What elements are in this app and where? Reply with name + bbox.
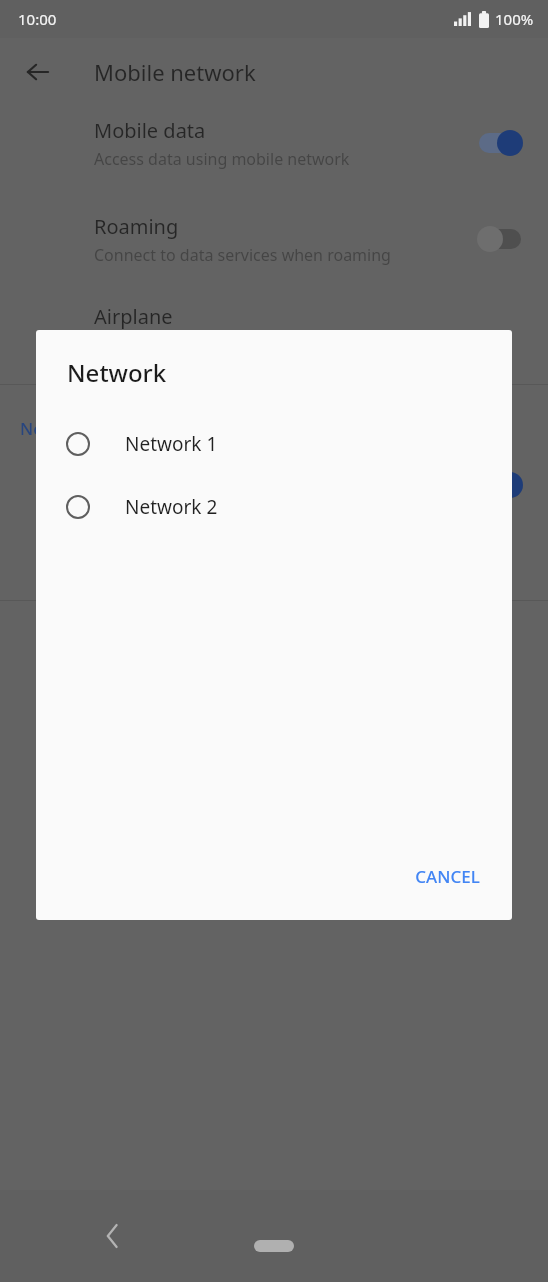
button[interactable]: Back: [90, 1212, 138, 1260]
button[interactable]: Network 1: [36, 412, 512, 475]
staticText: Network 2: [125, 494, 218, 520]
staticText: Airplane: [94, 303, 173, 330]
staticText: Access data using mobile network: [94, 148, 350, 170]
button[interactable]: Roaming: [0, 201, 548, 277]
staticText: Roaming: [94, 213, 179, 240]
staticText: Network operators: [20, 417, 175, 440]
staticText: Connect to data services when roaming: [94, 244, 391, 266]
staticText: 10:00: [18, 9, 57, 29]
button[interactable]: Home: [254, 1240, 294, 1252]
button[interactable]: Network 2: [36, 475, 512, 538]
staticText: Mobile network: [94, 57, 256, 87]
button[interactable]: Mobile data: [0, 105, 548, 181]
button[interactable]: CANCEL: [401, 855, 494, 898]
staticText: 100%: [495, 9, 534, 29]
staticText: Network 1: [125, 431, 218, 457]
button[interactable]: Back: [14, 48, 62, 96]
staticText: Mobile data: [94, 117, 206, 144]
staticText: Network: [67, 356, 167, 389]
staticText: CANCEL: [415, 865, 480, 888]
